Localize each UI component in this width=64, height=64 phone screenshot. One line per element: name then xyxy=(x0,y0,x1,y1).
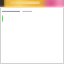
button[interactable] xyxy=(3,14,64,64)
button[interactable] xyxy=(0,9,64,13)
button[interactable]: Status indicator xyxy=(2,15,3,22)
button[interactable]: Header image xyxy=(0,0,64,8)
